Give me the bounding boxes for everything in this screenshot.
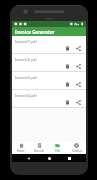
staticText: Home bbox=[17, 149, 25, 153]
button[interactable]: Delete bbox=[63, 44, 72, 53]
button[interactable]: Records bbox=[30, 142, 48, 154]
button[interactable]: Share bbox=[74, 62, 83, 71]
button[interactable]: Share bbox=[74, 44, 83, 53]
button[interactable]: Home bbox=[12, 142, 30, 154]
button[interactable]: Delete bbox=[63, 80, 72, 89]
button[interactable]: Share bbox=[74, 80, 83, 89]
staticText: Files bbox=[55, 149, 61, 153]
staticText: Invoice Generator bbox=[15, 29, 55, 35]
staticText: Records bbox=[34, 149, 44, 153]
button[interactable]: Delete bbox=[63, 62, 72, 71]
button[interactable]: Recents bbox=[66, 155, 73, 162]
button[interactable]: Invoice04.pdf bbox=[12, 90, 86, 107]
button[interactable]: Home bbox=[46, 155, 53, 162]
button[interactable]: Settings bbox=[67, 142, 86, 154]
button[interactable]: Share bbox=[74, 98, 83, 107]
button[interactable]: Back bbox=[25, 155, 32, 162]
staticText: Invoice03.pdf bbox=[15, 75, 37, 80]
staticText: Invoice04.pdf bbox=[15, 93, 37, 98]
button[interactable]: Invoice Generator bbox=[12, 27, 86, 36]
button[interactable]: Delete bbox=[63, 98, 72, 107]
staticText: Settings bbox=[72, 149, 82, 153]
button[interactable]: Files bbox=[48, 142, 67, 154]
button[interactable]: Invoice01.pdf bbox=[12, 36, 86, 53]
button[interactable]: Invoice03.pdf bbox=[12, 72, 86, 89]
staticText: Invoice01.pdf bbox=[15, 39, 37, 44]
button[interactable]: Invoice02.pdf bbox=[12, 54, 86, 71]
staticText: Invoice02.pdf bbox=[15, 57, 37, 62]
